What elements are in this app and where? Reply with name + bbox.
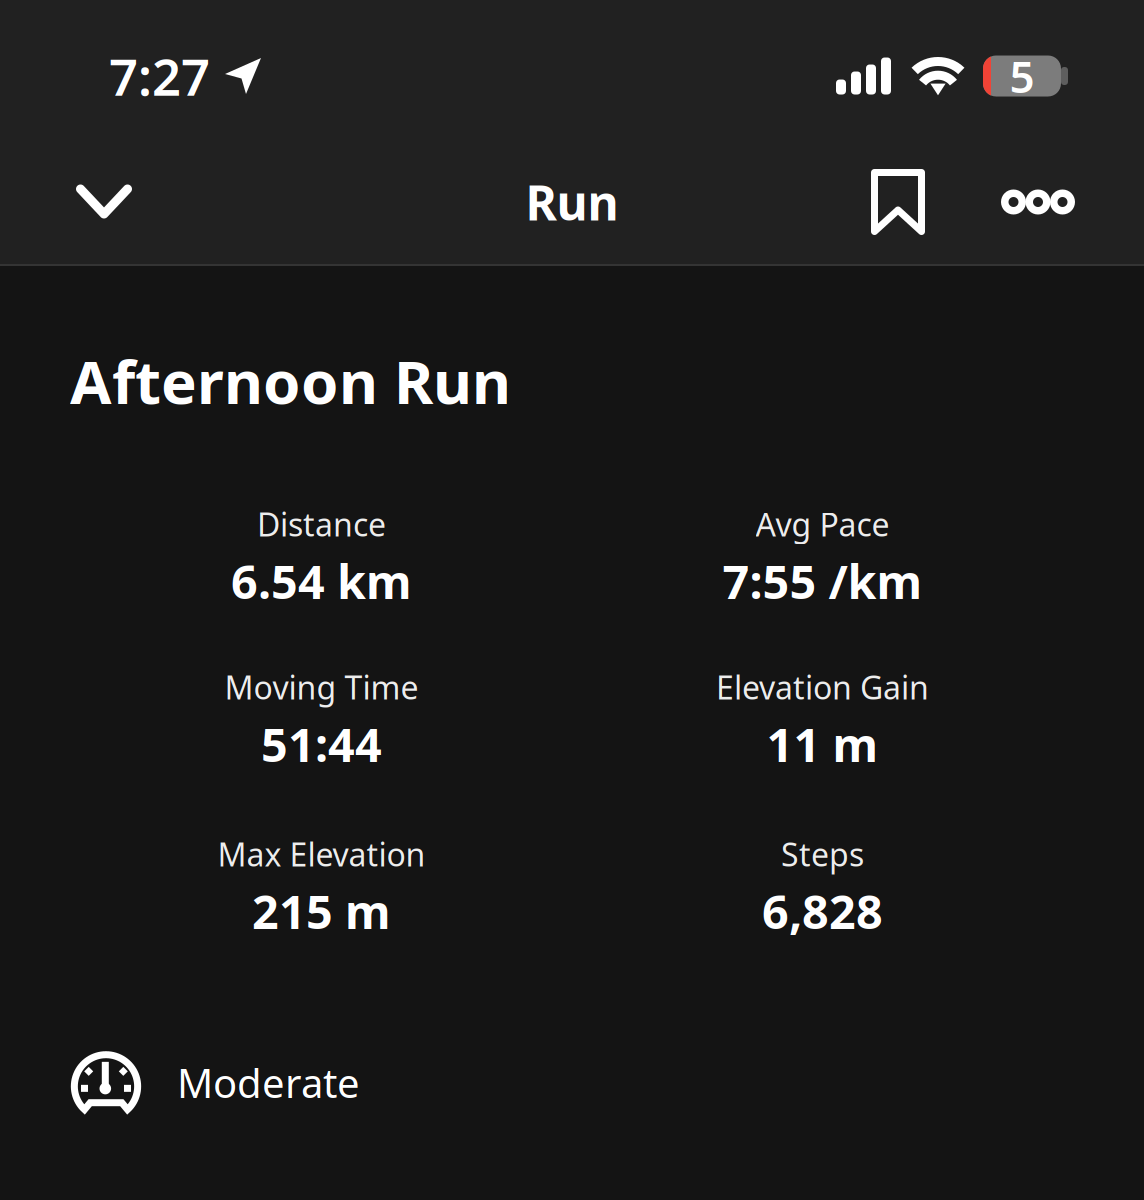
staticText: Run xyxy=(525,170,618,234)
staticText: Steps xyxy=(781,833,864,875)
staticText: 11 m xyxy=(766,713,878,775)
staticText: Moving Time xyxy=(224,666,418,708)
staticText: Max Elevation xyxy=(217,833,425,875)
staticText: 7:27 xyxy=(109,42,210,110)
staticText: 6.54 km xyxy=(231,550,412,612)
button[interactable]: Collapse xyxy=(52,150,156,254)
staticText: 215 m xyxy=(252,880,391,942)
staticText: Avg Pace xyxy=(755,503,889,545)
staticText: Elevation Gain xyxy=(716,666,929,708)
staticText: 51:44 xyxy=(261,713,382,775)
staticText: 6,828 xyxy=(762,880,883,942)
button[interactable]: Save activity xyxy=(846,150,950,254)
staticText: 7:55 /km xyxy=(722,550,922,612)
staticText: Distance xyxy=(257,503,386,545)
staticText: Moderate xyxy=(177,1056,360,1109)
button[interactable]: More options xyxy=(986,150,1090,254)
staticText: 5 xyxy=(1009,47,1034,105)
staticText: Afternoon Run xyxy=(70,341,511,421)
